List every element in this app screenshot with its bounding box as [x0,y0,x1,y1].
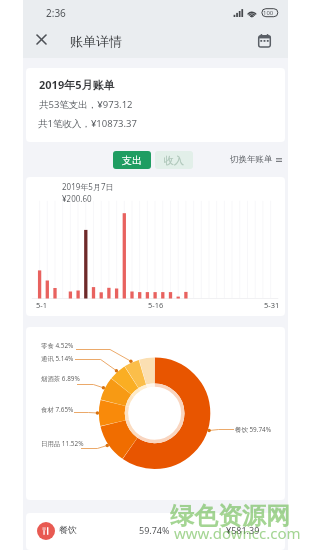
button[interactable]: Close [28,26,55,53]
staticText: 收入 [164,154,184,167]
staticText: 餐饮 59.74% [235,425,272,434]
staticText: 5-31 [264,300,280,310]
button[interactable]: 切换年账单 [230,154,282,165]
staticText: 5-16 [148,300,164,310]
staticText: 账单详情 [70,33,122,49]
button[interactable]: 收入 [155,151,193,169]
staticText: 食材 7.65% [41,405,74,414]
staticText: 零食 4.52% [41,341,74,350]
staticText: 59.74% [139,524,170,536]
staticText: 2:36 [46,6,66,20]
staticText: ¥581.39 [226,524,260,536]
staticText: 100 [263,9,274,17]
button[interactable]: Calendar [250,26,278,53]
staticText: 烟酒茶 6.89% [41,374,80,383]
staticText: 支出 [122,154,142,167]
button[interactable] [26,513,285,550]
staticText: 5-1 [36,300,47,310]
staticText: 切换年账单 [230,154,273,165]
staticText: 2019年5月7日 [62,181,114,192]
staticText: www.downcc.com [174,523,301,543]
staticText: ¥200.60 [62,193,92,204]
button[interactable]: 支出 [113,151,151,169]
staticText: 绿色资源网 [170,501,290,531]
staticText: 共53笔支出，¥973.12 [39,98,133,111]
staticText: 共1笔收入，¥10873.37 [38,117,137,130]
staticText: 日用品 11.52% [41,439,84,448]
staticText: 通讯 5.14% [41,354,74,363]
staticText: 餐饮 [59,524,77,535]
staticText: 2019年5月账单 [39,77,115,92]
